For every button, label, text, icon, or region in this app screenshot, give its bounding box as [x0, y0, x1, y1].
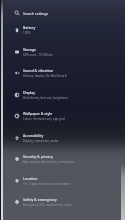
staticText: Accessibility — [23, 133, 44, 138]
staticText: Location — [23, 176, 38, 181]
other: Accessibility — [14, 135, 20, 141]
other: Battery — [14, 27, 20, 33]
other: Safety & emergency — [14, 199, 20, 205]
other: Storage — [14, 49, 20, 55]
staticText: Volume, haptics, Do Not Disturb — [23, 74, 67, 78]
staticText: Battery — [23, 25, 36, 30]
other: Wallpaper & style — [14, 113, 20, 119]
staticText: Security & privacy — [23, 154, 53, 159]
staticText: Colors, themed icons, app grid — [23, 117, 65, 121]
button[interactable]: Display — [0, 84, 125, 106]
other: Security & privacy — [14, 156, 20, 162]
staticText: Safety & emergency — [23, 197, 57, 202]
button[interactable]: Safety & emergency — [0, 191, 125, 213]
staticText: Search settings — [23, 11, 49, 16]
button[interactable]: Wallpaper & style — [0, 105, 125, 127]
button[interactable]: Search settings — [0, 2, 125, 24]
staticText: Dark theme, font size, brightness — [23, 96, 69, 100]
staticText: Emergency SOS, medical info, alerts — [23, 203, 72, 207]
other: Display — [14, 92, 20, 98]
staticText: Sound & vibration — [23, 68, 54, 73]
other: Location — [14, 178, 20, 184]
staticText: App security, device lock, permissions — [23, 160, 74, 164]
staticText: Wallpaper & style — [23, 111, 53, 116]
button[interactable]: Accessibility — [0, 127, 125, 149]
button[interactable]: Passwords & accounts — [0, 213, 125, 220]
staticText: 50% used - 15 GB free — [23, 53, 53, 57]
other: Sound & vibration — [14, 70, 20, 76]
staticText: Display — [23, 90, 36, 95]
staticText: Storage — [23, 47, 36, 52]
button[interactable]: Storage — [0, 41, 125, 63]
button[interactable]: Sound & vibration — [0, 62, 125, 84]
button[interactable]: Location — [0, 170, 125, 192]
button[interactable]: Battery — [0, 19, 125, 41]
staticText: Display, interaction, audio — [23, 139, 59, 143]
button[interactable]: Security & privacy — [0, 148, 125, 170]
staticText: 100% — [23, 31, 31, 35]
staticText: On - 5 apps have access to location — [23, 182, 71, 186]
